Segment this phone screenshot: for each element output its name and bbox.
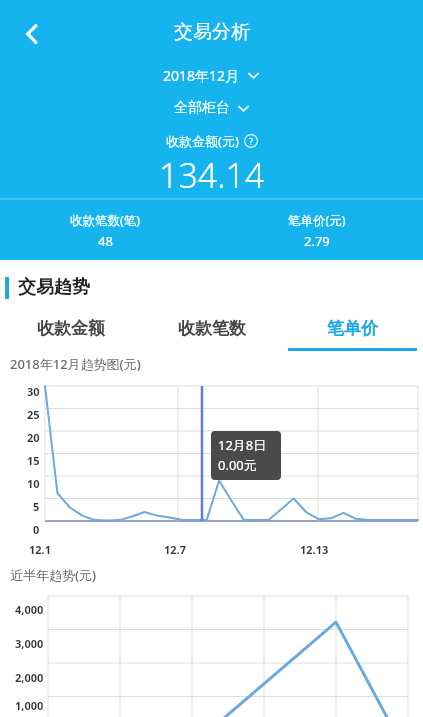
staticText: 12.1 [29,542,51,557]
staticText: 2.79 [304,232,330,250]
button[interactable]: 收款笔数(笔) [0,200,211,260]
staticText: 48 [98,232,113,250]
staticText: 收款笔数(笔) [70,212,141,229]
staticText: 笔单价 [327,318,378,339]
button[interactable]: Back [8,10,56,58]
staticText: 0 [33,522,40,537]
button[interactable]: 全部柜台 [174,99,250,117]
staticText: 20 [27,430,40,445]
staticText: 12.13 [300,542,329,557]
button[interactable]: 笔单价(元) [211,200,423,260]
button[interactable]: 收款金额 [0,305,141,351]
button[interactable]: 收款笔数 [141,305,282,351]
staticText: 收款金额(元) [166,132,239,150]
staticText: 4,000 [15,602,44,617]
staticText: 25 [27,407,40,422]
staticText: 2018年12月 [163,66,240,85]
staticText: 交易趋势 [18,276,90,299]
staticText: 15 [27,453,40,468]
button[interactable]: 笔单价 [282,305,423,351]
staticText: 2,000 [15,670,44,685]
button[interactable]: Help [244,134,258,148]
staticText: 收款笔数 [178,318,246,339]
staticText: 1,000 [15,698,44,713]
staticText: 0.00元 [218,456,257,474]
staticText: 2018年12月趋势图(元) [10,355,141,373]
button[interactable]: 2018年12月 [163,66,260,85]
staticText: 收款金额 [37,318,105,339]
staticText: ? [249,135,253,147]
staticText: 近半年趋势(元) [10,566,97,584]
staticText: 10 [27,476,40,491]
staticText: 3,000 [15,636,44,651]
staticText: 交易分析 [174,20,250,44]
staticText: 134.14 [159,152,265,198]
staticText: 笔单价(元) [288,212,346,229]
staticText: 全部柜台 [174,99,230,117]
staticText: 30 [27,384,40,399]
staticText: 5 [33,499,40,514]
staticText: 12月8日 [218,436,267,454]
staticText: 12.7 [164,542,186,557]
